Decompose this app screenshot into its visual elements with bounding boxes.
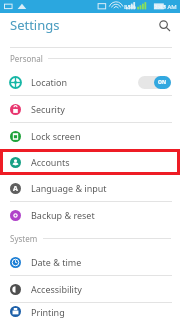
staticText: ON bbox=[158, 79, 167, 86]
button[interactable]: Security bbox=[0, 96, 180, 122]
staticText: Accessibility bbox=[31, 283, 171, 295]
staticText: Security bbox=[31, 103, 171, 115]
staticText: 2:43 AM bbox=[154, 3, 177, 11]
button[interactable]: Accessibility bbox=[0, 276, 180, 302]
staticText: Accounts bbox=[31, 156, 70, 168]
staticText: System bbox=[10, 233, 38, 244]
button[interactable]: Backup & reset bbox=[0, 202, 180, 228]
button[interactable]: Date & time bbox=[0, 249, 180, 275]
button[interactable]: Location on bbox=[138, 76, 171, 89]
staticText: Language & input bbox=[31, 182, 171, 194]
button[interactable]: Lock screen bbox=[0, 123, 180, 149]
staticText: Printing bbox=[31, 306, 171, 318]
staticText: Lock screen bbox=[31, 130, 171, 142]
staticText: Settings bbox=[10, 16, 156, 34]
staticText: Date & time bbox=[31, 256, 171, 268]
button[interactable]: Location bbox=[0, 69, 180, 95]
staticText: 85% bbox=[124, 3, 136, 11]
button[interactable]: Search bbox=[156, 17, 172, 33]
button[interactable]: A bbox=[0, 175, 180, 201]
button[interactable]: Printing bbox=[0, 303, 180, 320]
staticText: A bbox=[13, 184, 18, 194]
button[interactable]: Accounts bbox=[0, 149, 180, 175]
staticText: Location bbox=[31, 76, 138, 88]
staticText: Personal bbox=[10, 53, 43, 64]
staticText: Backup & reset bbox=[31, 209, 171, 221]
